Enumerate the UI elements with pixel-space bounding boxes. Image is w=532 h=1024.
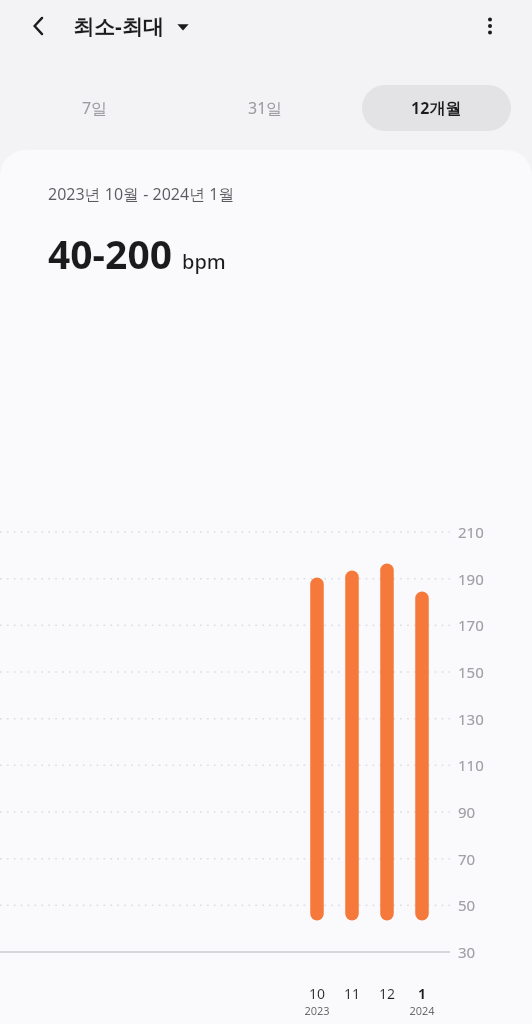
staticText: 12 — [371, 984, 403, 1003]
staticText: 12개월 — [411, 97, 462, 119]
staticText: bpm — [182, 248, 226, 275]
button[interactable]: 7일 — [21, 85, 169, 131]
staticText: 1 — [406, 984, 438, 1003]
staticText: 150 — [458, 662, 484, 682]
staticText: 50 — [458, 895, 476, 915]
staticText: 170 — [458, 615, 484, 635]
staticText: 110 — [458, 755, 484, 775]
staticText: 190 — [458, 569, 484, 589]
button[interactable]: 최소-최대 — [73, 12, 189, 41]
button[interactable]: 12개월 — [362, 85, 511, 131]
staticText: 40-200 — [48, 227, 173, 280]
staticText: 2023년 10월 - 2024년 1월 — [48, 183, 235, 205]
staticText: 30 — [458, 942, 476, 962]
staticText: 최소-최대 — [73, 12, 164, 41]
staticText: 11 — [336, 984, 368, 1003]
staticText: 2024 — [402, 1003, 442, 1018]
staticText: 90 — [458, 802, 476, 822]
staticText: 7일 — [82, 97, 108, 119]
staticText: 10 — [301, 984, 333, 1003]
staticText: 210 — [458, 522, 484, 542]
staticText: 31일 — [248, 97, 283, 119]
staticText: 2023 — [297, 1003, 337, 1018]
button[interactable]: 31일 — [191, 85, 340, 131]
button[interactable]: More options — [469, 5, 511, 47]
staticText: 70 — [458, 849, 476, 869]
staticText: 130 — [458, 709, 484, 729]
button[interactable]: Back — [18, 5, 60, 47]
